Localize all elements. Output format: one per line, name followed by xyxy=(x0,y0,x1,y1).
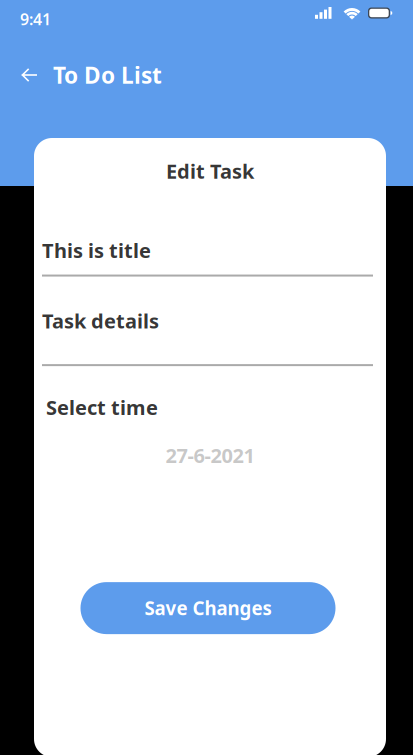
staticText: Save Changes xyxy=(144,596,271,620)
staticText: To Do List xyxy=(53,60,162,90)
button[interactable]: Task details xyxy=(34,308,381,366)
button[interactable]: 27-6-2021 xyxy=(34,444,386,466)
staticText: 9:41 xyxy=(20,8,51,30)
staticText: Select time xyxy=(46,394,158,420)
button[interactable]: Back xyxy=(10,57,48,93)
button[interactable]: Save Changes xyxy=(80,582,335,634)
button[interactable]: This is title xyxy=(34,237,381,277)
staticText: Edit Task xyxy=(166,158,254,184)
button[interactable]: To Do List xyxy=(53,57,162,93)
staticText: This is title xyxy=(42,237,151,264)
staticText: 27-6-2021 xyxy=(165,442,254,468)
staticText: Task details xyxy=(42,308,159,334)
